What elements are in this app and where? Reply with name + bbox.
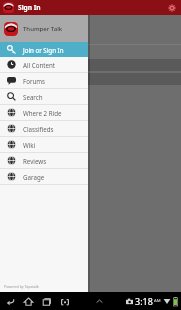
staticText: Reviews [23, 157, 47, 165]
button[interactable]: Thumper Talk [0, 15, 88, 42]
button[interactable]: Reviews [0, 153, 88, 168]
staticText: Classifieds [23, 125, 54, 133]
button[interactable]: Show notifications [92, 294, 106, 308]
staticText: Garage [23, 173, 45, 181]
button[interactable]: Settings [165, 1, 179, 15]
staticText: Where 2 Ride [23, 109, 62, 117]
staticText: Forums [23, 77, 46, 85]
button[interactable]: Back [3, 294, 18, 309]
button[interactable]: Wiki [0, 137, 88, 152]
staticText: Search [23, 93, 43, 101]
button[interactable]: Classifieds [0, 121, 88, 136]
button[interactable]: Garage [0, 169, 88, 184]
staticText: Wiki [23, 141, 36, 149]
button[interactable]: Forums [0, 73, 88, 88]
button[interactable]: Screenshot [57, 294, 72, 309]
button[interactable]: Home [21, 294, 36, 309]
button[interactable]: Search [0, 89, 88, 104]
button[interactable]: Recent apps [39, 294, 54, 309]
staticText: Thumper Talk [23, 25, 63, 33]
staticText: Join or Sign In [23, 46, 64, 54]
staticText: Powered by Tapatalk [4, 284, 39, 289]
staticText: AM [154, 298, 161, 304]
staticText: 3:18 [135, 295, 153, 307]
button[interactable]: All Content [0, 57, 88, 72]
staticText: All Content [23, 61, 56, 69]
staticText: Sign In [18, 3, 41, 12]
button[interactable]: Join or Sign In [0, 42, 88, 57]
button[interactable]: Where 2 Ride [0, 105, 88, 120]
button[interactable]: Open navigation drawer [2, 1, 15, 14]
